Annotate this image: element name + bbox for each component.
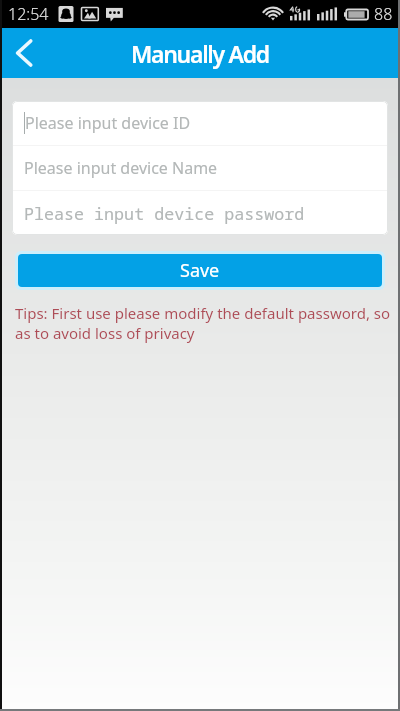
button[interactable]: Back <box>0 28 48 78</box>
button[interactable]: Please input device Name <box>12 146 388 190</box>
staticText: Please input device password <box>24 202 305 225</box>
button[interactable]: Please input device password <box>12 191 388 235</box>
staticText: Please input device ID <box>25 112 191 134</box>
staticText: Save <box>180 258 220 283</box>
staticText: 12:54 <box>8 3 49 25</box>
staticText: Manually Add <box>131 38 269 69</box>
staticText: Please input device Name <box>24 157 218 179</box>
button[interactable]: Save <box>15 251 385 290</box>
button[interactable]: Please input device ID <box>12 101 388 145</box>
staticText: 88 <box>374 3 393 25</box>
staticText: Tips: First use please modify the defaul… <box>15 303 397 343</box>
